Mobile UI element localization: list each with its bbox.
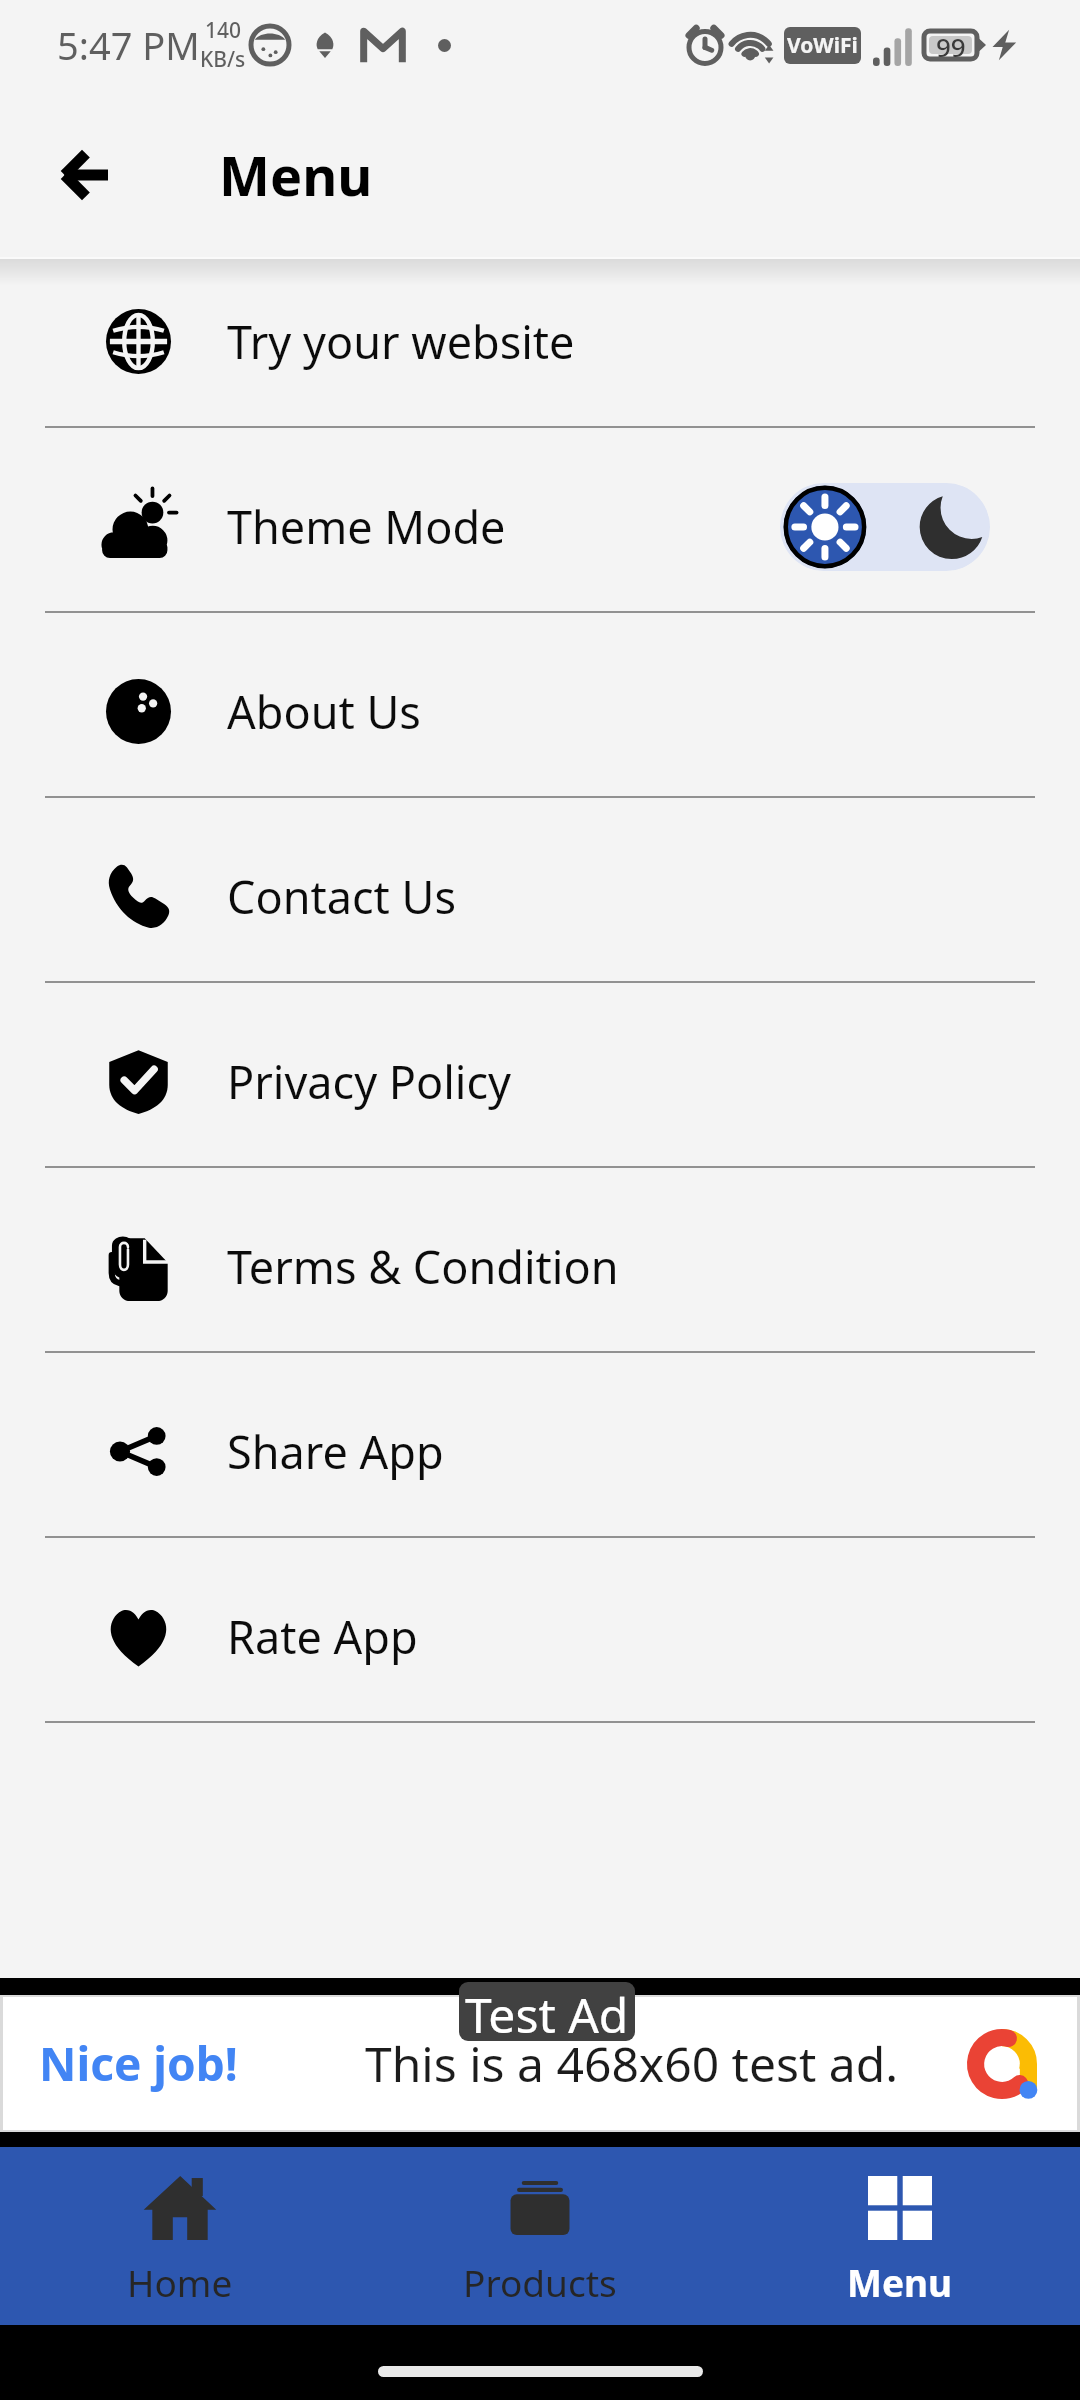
staticText: Products: [463, 2257, 617, 2307]
staticText: 5:47 PM: [57, 19, 200, 71]
button[interactable]: About Us: [0, 613, 1080, 796]
staticText: Contact Us: [227, 866, 456, 927]
staticText: Menu: [847, 2257, 953, 2307]
staticText: Terms & Condition: [227, 1236, 619, 1297]
staticText: Test Ad: [465, 1982, 629, 2041]
button[interactable]: Contact Us: [0, 798, 1080, 981]
staticText: Nice job!: [39, 2032, 238, 2095]
staticText: Share App: [227, 1421, 444, 1482]
staticText: Privacy Policy: [227, 1051, 511, 1112]
staticText: Menu: [219, 138, 373, 212]
button[interactable]: Rate App: [0, 1538, 1080, 1721]
button[interactable]: Privacy Policy: [0, 983, 1080, 1166]
button[interactable]: Home: [0, 2147, 360, 2325]
staticText: KB/s: [200, 45, 246, 74]
staticText: About Us: [227, 681, 421, 742]
button[interactable]: Share App: [0, 1353, 1080, 1536]
staticText: Home: [127, 2257, 233, 2307]
staticText: This is a 468x60 test ad.: [365, 2031, 899, 2096]
staticText: VoWiFi: [787, 31, 858, 60]
button[interactable]: Back: [28, 119, 140, 231]
staticText: Try your website: [227, 311, 575, 372]
staticText: Rate App: [227, 1606, 418, 1667]
staticText: 99: [936, 29, 966, 61]
button[interactable]: Products: [360, 2147, 720, 2325]
button[interactable]: Try your website: [0, 243, 1080, 426]
button[interactable]: Terms & Condition: [0, 1168, 1080, 1351]
staticText: 140: [205, 16, 242, 45]
button[interactable]: Theme Mode: [0, 428, 1080, 611]
button[interactable]: Menu: [720, 2147, 1080, 2325]
button[interactable]: Toggle theme mode: [780, 483, 990, 571]
staticText: Theme Mode: [227, 496, 506, 557]
button[interactable]: Nice job!: [3, 1997, 1077, 2130]
